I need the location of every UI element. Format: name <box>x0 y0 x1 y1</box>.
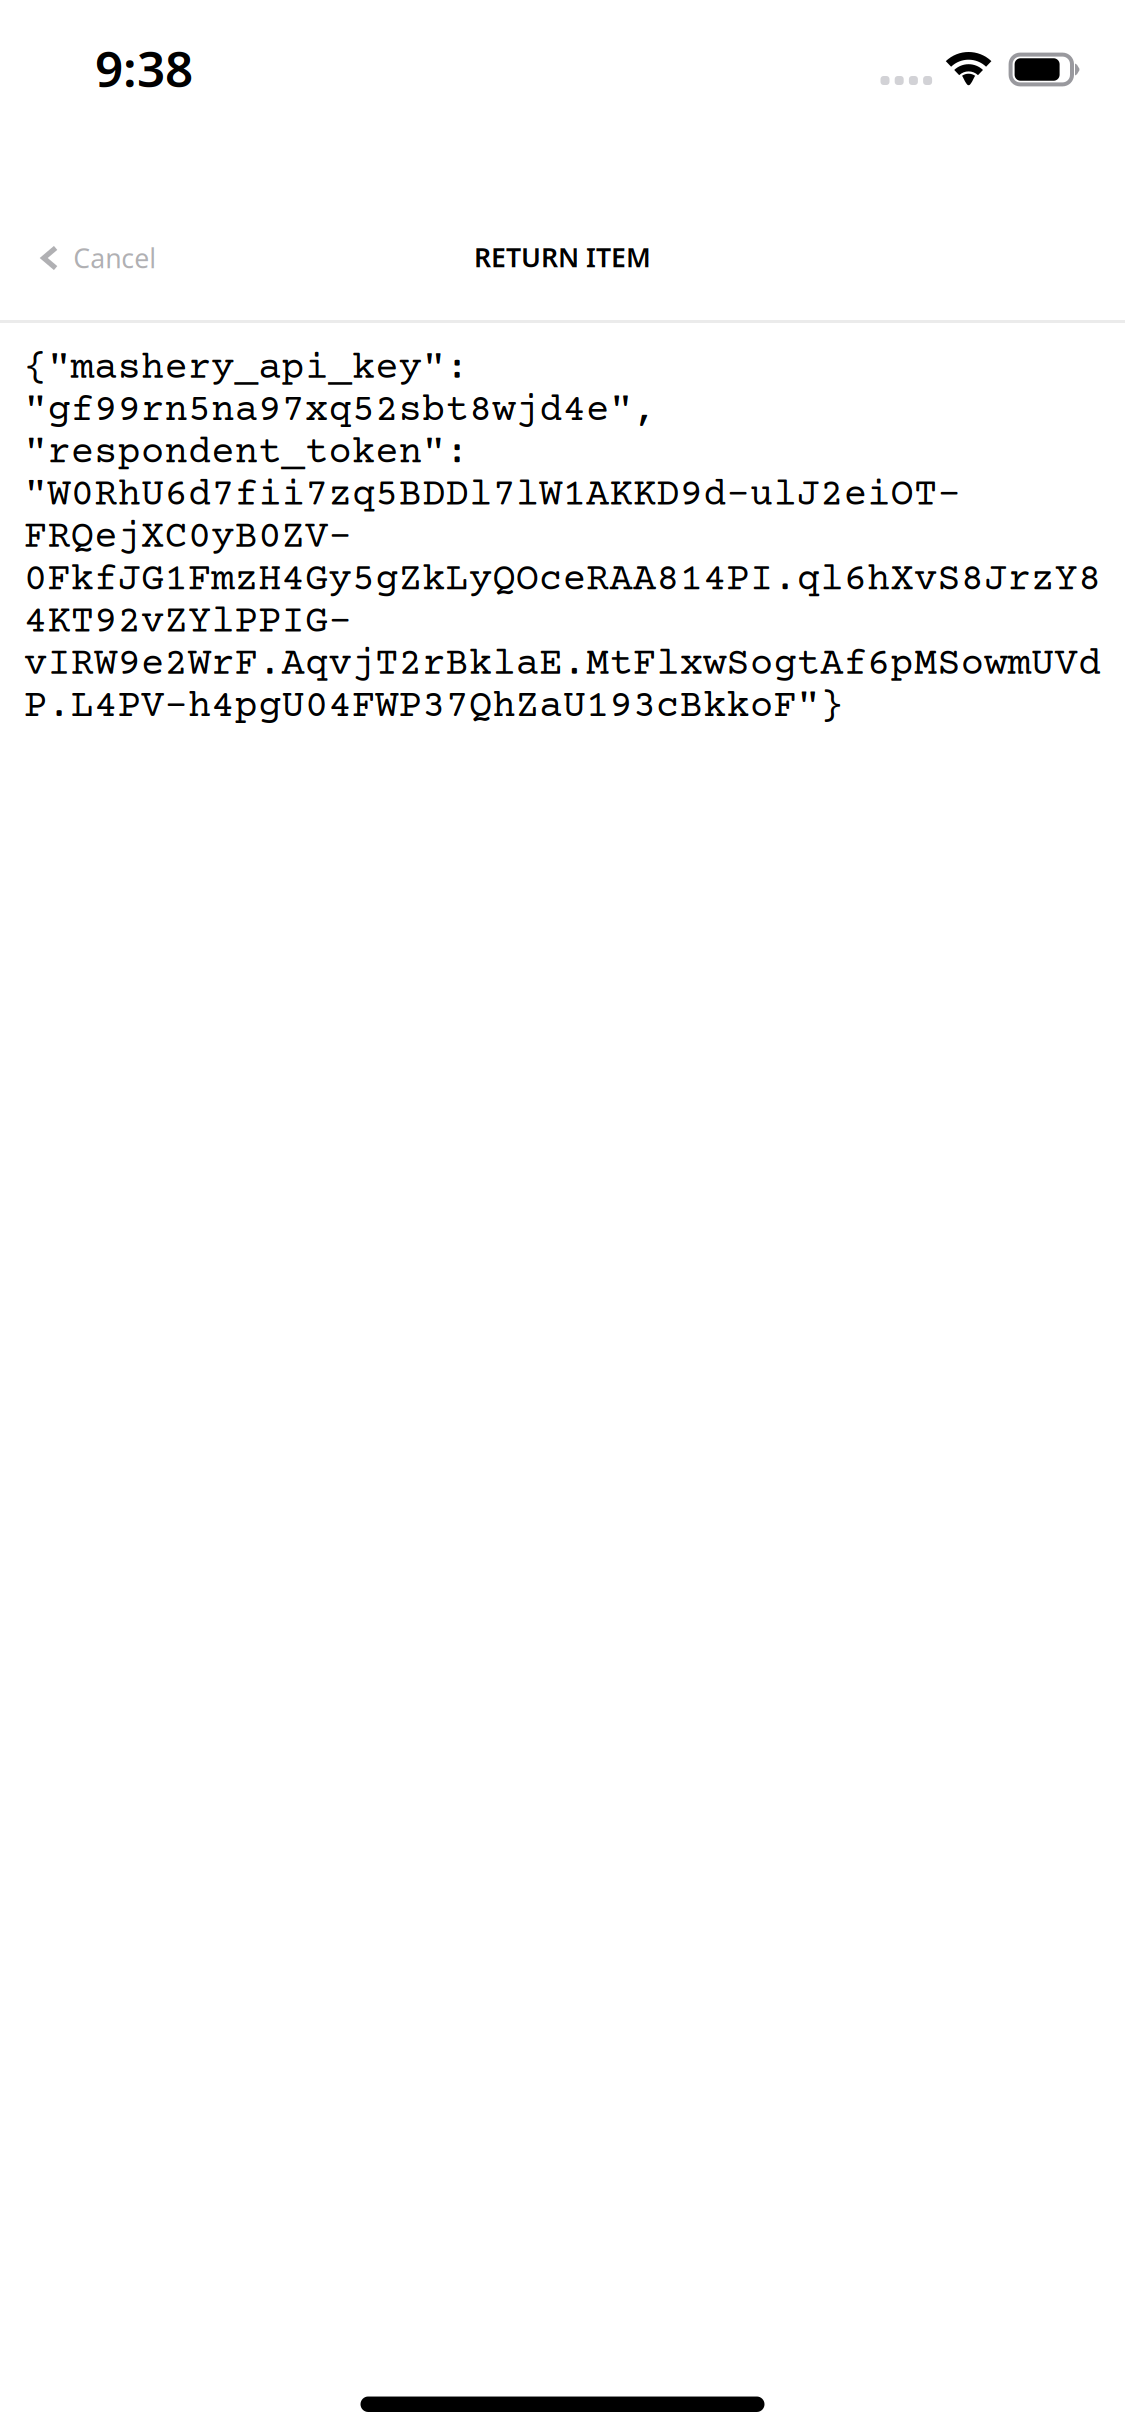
button[interactable]: Cancel <box>0 207 186 303</box>
staticText: 0FkfJG1FmzH4Gy5gZkLyQOceRAA814PI.ql6hXvS… <box>24 559 1101 602</box>
staticText: "gf99rn5na97xq52sbt8wjd4e", <box>24 390 656 433</box>
staticText: 4KT92vZYlPPIG- <box>24 601 351 645</box>
staticText: vIRW9e2WrF.AqvjT2rBklaE.MtFlxwSogtAf6pMS… <box>24 643 1101 687</box>
staticText: 9:38 <box>95 35 193 101</box>
staticText: FRQejXC0yB0ZV- <box>24 517 351 560</box>
staticText: P.L4PV-h4pgU04FWP37QhZaU193cBkkoF"} <box>24 686 843 729</box>
staticText: "respondent_token": <box>24 432 469 475</box>
staticText: Cancel <box>73 240 156 276</box>
staticText: "W0RhU6d7fii7zq5BDDl7lW1AKKD9d-ulJ2eiOT- <box>24 474 960 518</box>
staticText: {"mashery_api_key": <box>24 347 469 391</box>
staticText: RETURN ITEM <box>474 239 651 275</box>
